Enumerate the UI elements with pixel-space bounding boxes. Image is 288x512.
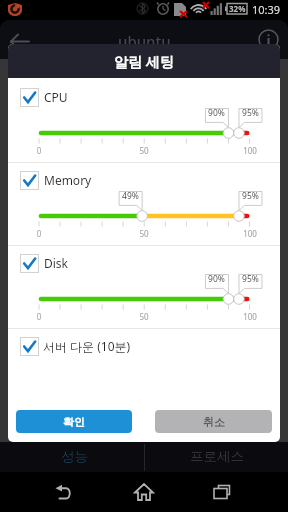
staticText: CPU <box>44 89 68 105</box>
button[interactable]: 취소 <box>155 410 272 433</box>
button[interactable]: 성능 <box>0 442 144 472</box>
button[interactable]: Back <box>4 23 38 57</box>
staticText: 취소 <box>203 415 225 429</box>
staticText: Disk <box>44 255 69 271</box>
staticText: 90% <box>205 273 228 285</box>
button[interactable]: Disk <box>8 246 280 280</box>
staticText: 95% <box>239 107 262 119</box>
staticText: 100 <box>241 311 259 322</box>
button[interactable]: Home <box>128 476 160 508</box>
staticText: 프로세스 <box>190 448 244 465</box>
staticText: 10:39 <box>252 2 281 17</box>
staticText: 95% <box>239 190 262 202</box>
staticText: ubuntu <box>118 31 171 51</box>
staticText: 확인 <box>63 415 85 429</box>
staticText: 95% <box>239 273 262 285</box>
button[interactable]: 확인 <box>16 410 132 433</box>
button[interactable]: Back <box>47 476 79 508</box>
staticText: 100 <box>241 228 259 239</box>
button[interactable]: Memory <box>8 163 280 197</box>
staticText: 성능 <box>61 448 88 465</box>
staticText: 서버 다운 (10분) <box>43 338 131 354</box>
staticText: 알림 세팅 <box>114 52 174 71</box>
staticText: 50 <box>136 145 152 156</box>
staticText: Memory <box>44 172 92 188</box>
button[interactable]: 서버 다운 (10분) <box>8 325 280 367</box>
staticText: 0 <box>31 228 47 239</box>
button[interactable]: Info <box>258 29 279 50</box>
staticText: 90% <box>205 107 228 119</box>
button[interactable]: CPU <box>8 80 280 114</box>
button[interactable]: 프로세스 <box>144 442 288 472</box>
staticText: 49% <box>119 190 142 202</box>
staticText: 32% <box>229 3 246 14</box>
staticText: 50 <box>136 311 152 322</box>
staticText: 50 <box>136 228 152 239</box>
button[interactable]: Recent apps <box>206 476 238 508</box>
staticText: 0 <box>31 145 47 156</box>
staticText: 100 <box>241 145 259 156</box>
staticText: 0 <box>31 311 47 322</box>
